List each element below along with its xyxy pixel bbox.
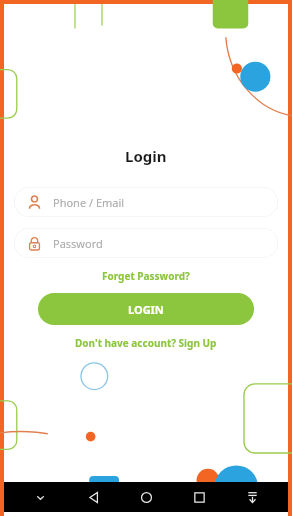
staticText: LOGIN [128,302,164,317]
button[interactable]: Password [14,228,278,258]
button[interactable]: Home [129,482,163,512]
staticText: Phone / Email [53,195,125,210]
button[interactable]: Back [76,482,110,512]
button[interactable]: Recent apps [182,482,216,512]
button[interactable]: Hide keyboard [23,482,57,512]
staticText: Login [125,146,167,166]
button[interactable]: Don't have account? Sign Up [69,334,223,352]
button[interactable]: Download [235,482,269,512]
staticText: Don't have account? Sign Up [75,336,217,350]
button[interactable]: LOGIN [38,293,254,325]
button[interactable]: Phone / Email [14,187,278,217]
staticText: Forget Password? [102,269,190,283]
button[interactable]: Forget Password? [96,267,196,285]
staticText: Password [53,236,103,251]
